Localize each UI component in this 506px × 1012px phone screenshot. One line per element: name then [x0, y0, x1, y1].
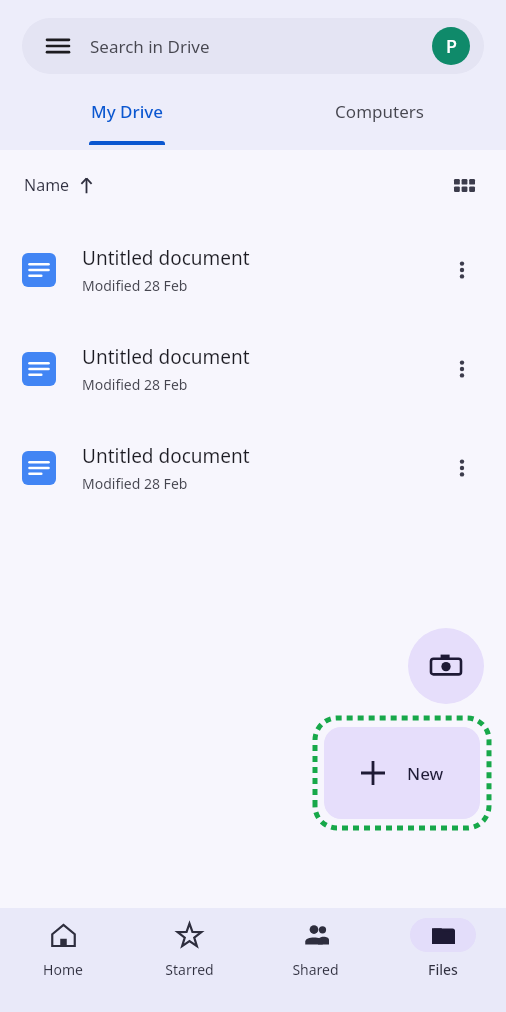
button[interactable]: More options	[440, 248, 484, 292]
button[interactable]: More options	[440, 347, 484, 391]
button[interactable]: My Drive	[0, 90, 253, 150]
button[interactable]: More options	[440, 446, 484, 490]
button[interactable]: Untitled document	[0, 319, 506, 418]
button[interactable]: Account	[432, 27, 470, 65]
staticText: Untitled document	[82, 443, 250, 469]
staticText: Home	[43, 960, 83, 979]
staticText: Computers	[335, 100, 424, 123]
staticText: Modified 28 Feb	[82, 276, 188, 295]
staticText: Untitled document	[82, 245, 250, 271]
staticText: Modified 28 Feb	[82, 474, 188, 493]
button[interactable]: Open navigation menu	[36, 24, 80, 68]
button[interactable]: Name	[22, 170, 97, 200]
staticText: New	[407, 762, 444, 785]
button[interactable]: New	[324, 727, 480, 819]
staticText: Search in Drive	[90, 35, 210, 58]
staticText: My Drive	[91, 100, 163, 123]
staticText: Modified 28 Feb	[82, 375, 188, 394]
button[interactable]: Computers	[253, 90, 506, 150]
button[interactable]: Open navigation menu	[22, 18, 484, 74]
staticText: Shared	[292, 960, 339, 979]
button[interactable]: Shared	[252, 908, 379, 1012]
staticText: Files	[428, 960, 458, 979]
staticText: Untitled document	[82, 344, 250, 370]
button[interactable]: Files	[379, 908, 506, 1012]
staticText: Starred	[165, 960, 214, 979]
button[interactable]: Switch to grid view	[444, 165, 484, 205]
button[interactable]: Scan with camera	[408, 628, 484, 704]
staticText: Name	[24, 174, 70, 196]
button[interactable]: Starred	[126, 908, 252, 1012]
button[interactable]: Home	[0, 908, 126, 1012]
staticText: P	[446, 34, 457, 59]
button[interactable]: Untitled document	[0, 220, 506, 319]
button[interactable]: Untitled document	[0, 418, 506, 517]
